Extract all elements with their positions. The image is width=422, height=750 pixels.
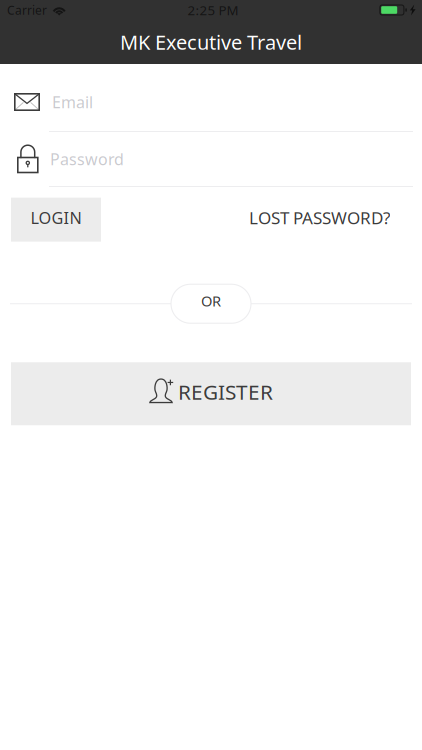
staticText: MK Executive Travel: [120, 28, 302, 56]
staticText: LOST PASSWORD?: [249, 206, 390, 229]
staticText: LOGIN: [30, 206, 81, 229]
staticText: REGISTER: [178, 378, 273, 406]
staticText: OR: [201, 291, 221, 311]
staticText: 2:25 PM: [187, 1, 238, 19]
staticText: Carrier: [7, 2, 47, 18]
staticText: Email: [52, 91, 93, 113]
button[interactable]: LOGIN: [11, 198, 101, 242]
button[interactable]: LOST PASSWORD?: [249, 197, 390, 242]
staticText: Password: [50, 148, 124, 170]
button[interactable]: REGISTER: [11, 362, 411, 425]
